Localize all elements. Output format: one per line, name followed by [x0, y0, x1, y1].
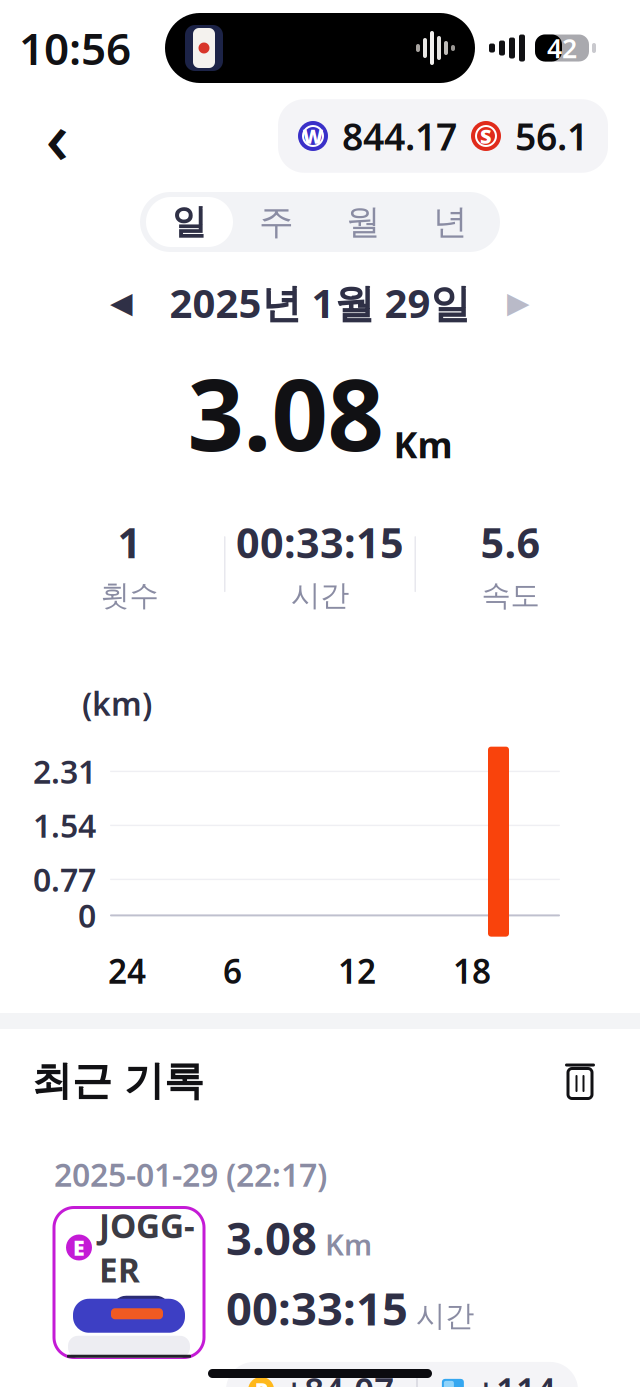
staticText: S	[480, 123, 492, 149]
staticText: 횟수	[100, 578, 158, 614]
staticText: 2.31	[33, 750, 96, 793]
staticText: 월	[346, 201, 381, 243]
staticText: 10:56	[19, 19, 131, 77]
staticText: P	[255, 1376, 268, 1387]
staticText: E	[73, 1233, 85, 1262]
staticText: W	[302, 123, 323, 149]
staticText: +84.07	[284, 1367, 394, 1387]
staticText: 일	[172, 201, 207, 243]
staticText: (km)	[82, 682, 152, 725]
staticText: 1.54	[33, 804, 96, 847]
button[interactable]: Previous day	[99, 281, 143, 325]
staticText: 3.08	[187, 347, 383, 478]
staticText: 년	[433, 201, 468, 243]
staticText: JOGGER	[99, 1203, 195, 1292]
button[interactable]: 월	[320, 197, 407, 247]
button[interactable]: 일	[146, 197, 233, 247]
staticText: 0.77	[33, 858, 96, 901]
button[interactable]: 2025-01-29 (22:17)	[32, 1133, 608, 1343]
button[interactable]: Back	[22, 104, 92, 168]
button[interactable]: Next day	[496, 281, 540, 325]
staticText: 42	[547, 30, 577, 66]
staticText: ▶	[507, 286, 530, 319]
staticText: 00:33:15	[226, 1278, 408, 1338]
staticText: 56.1	[515, 111, 588, 161]
staticText: Km	[325, 1225, 372, 1264]
button[interactable]: 주	[233, 197, 320, 247]
staticText: 6	[223, 949, 242, 993]
staticText: ◀	[110, 286, 133, 319]
staticText: 24	[108, 949, 146, 993]
staticText: 3.08	[226, 1207, 317, 1268]
staticText: 1	[117, 515, 141, 570]
staticText: 2025년 1월 29일	[169, 276, 470, 329]
staticText: 시간	[416, 1298, 474, 1334]
staticText: +114	[476, 1367, 556, 1387]
staticText: ‹	[45, 88, 68, 184]
staticText: 844.17	[342, 111, 457, 161]
button[interactable]: 년	[407, 197, 494, 247]
button[interactable]: W	[278, 99, 608, 173]
staticText: Km	[393, 420, 452, 468]
staticText: 시간	[291, 578, 349, 614]
button[interactable]: Delete records	[552, 1053, 608, 1109]
staticText: 속도	[481, 578, 539, 614]
staticText: 5.6	[480, 515, 540, 570]
staticText: 00:33:15	[236, 515, 404, 570]
staticText: 18	[453, 949, 491, 993]
staticText: 2025-01-29 (22:17)	[54, 1153, 327, 1195]
staticText: 12	[338, 949, 376, 993]
staticText: 주	[259, 201, 294, 243]
staticText: 0	[78, 894, 96, 937]
staticText: 최근 기록	[32, 1056, 204, 1105]
